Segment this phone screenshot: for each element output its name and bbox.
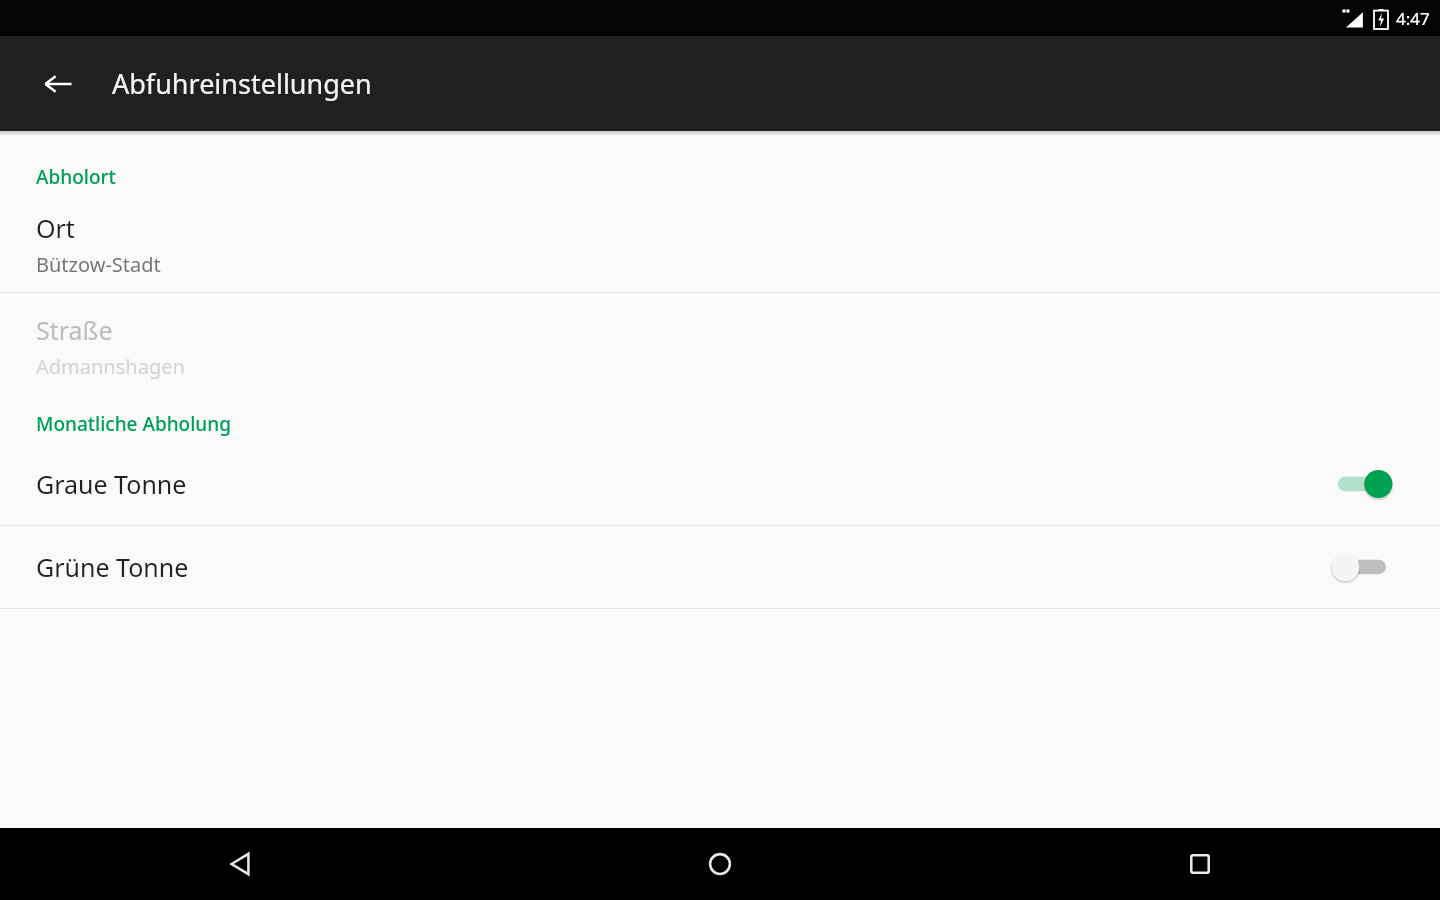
other: On (1334, 464, 1396, 504)
button[interactable]: Back (208, 832, 272, 896)
staticText: Monatliche Abholung (36, 411, 231, 437)
staticText: Abfuhreinstellungen (112, 65, 372, 102)
button[interactable]: Ort (0, 196, 1440, 292)
staticText: Admannshagen (36, 353, 185, 380)
staticText: Bützow-Stadt (36, 251, 161, 278)
button[interactable]: Home (688, 832, 752, 896)
button[interactable]: Graue Tonne (0, 443, 1440, 525)
button[interactable]: Grüne Tonne (0, 526, 1440, 608)
staticText: 4:47 (1396, 7, 1430, 30)
other: Off (1334, 547, 1396, 587)
staticText: Ort (36, 211, 75, 245)
staticText: Straße (36, 313, 113, 347)
button[interactable]: Recent apps (1168, 832, 1232, 896)
button: Straße (0, 293, 1440, 399)
staticText: Abholort (36, 164, 116, 190)
staticText: Grüne Tonne (36, 550, 1334, 584)
staticText: Graue Tonne (36, 467, 1334, 501)
button[interactable]: Back (30, 56, 86, 112)
